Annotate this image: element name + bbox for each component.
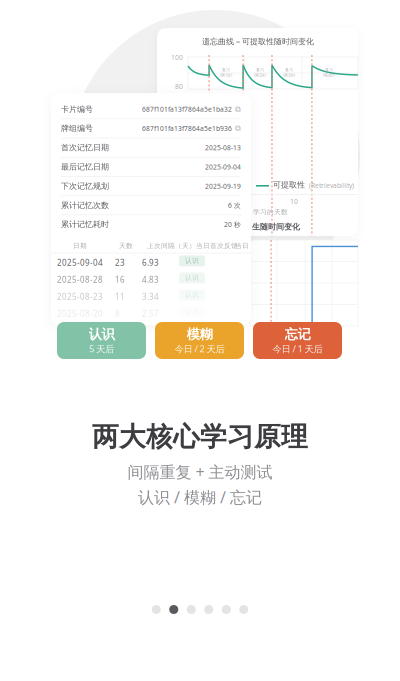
staticText: 认识 / 模糊 / 忘记 — [138, 486, 262, 508]
staticText: 2025-08-23 — [57, 291, 103, 302]
staticText: 间隔重复 + 主动测试 — [127, 461, 272, 482]
staticText: 认识 — [185, 274, 199, 282]
staticText: 2025-08-13 — [205, 143, 241, 152]
staticText: 100 — [171, 53, 183, 62]
staticText: 8 — [115, 308, 120, 319]
staticText: 2025-09-04 — [57, 257, 103, 268]
staticText: (第3次) — [283, 72, 295, 78]
staticText: 天数 — [119, 242, 133, 250]
staticText: 忘记 — [284, 326, 310, 342]
staticText: 6.93 — [142, 257, 159, 268]
staticText: 4.83 — [142, 274, 159, 285]
staticText: (第2次) — [254, 72, 266, 78]
staticText: 可提取性 — [273, 180, 305, 190]
staticText: 学习的天数 — [253, 208, 288, 216]
staticText: 生随时间变化 — [252, 222, 300, 232]
staticText: 下次记忆规划 — [61, 181, 109, 191]
staticText: 16 — [115, 274, 125, 285]
staticText: 2.57 — [142, 308, 159, 319]
staticText: (第1次) — [220, 72, 232, 78]
staticText: 日期 — [73, 242, 87, 250]
staticText: 复习 — [285, 67, 293, 72]
staticText: 认识 — [185, 291, 199, 299]
button[interactable]: 模糊 — [155, 322, 244, 359]
staticText: 当日 — [235, 242, 249, 250]
staticText: 今日 / 1 天后 — [272, 342, 322, 355]
button[interactable]: 认识 — [57, 322, 146, 359]
staticText: 5 天后 — [89, 342, 114, 355]
staticText: 20 秒 — [224, 220, 241, 229]
staticText: 模糊 — [186, 326, 212, 342]
staticText: 复习 — [325, 67, 333, 72]
staticText: 2025-08-20 — [57, 308, 103, 319]
staticText: 23 — [115, 257, 125, 268]
staticText: 2025-09-19 — [205, 182, 241, 190]
staticText: 上次间隔（天） — [147, 242, 196, 250]
staticText: 首次记忆日期 — [61, 143, 109, 152]
staticText: 10 — [290, 197, 298, 206]
staticText: 遗忘曲线 – 可提取性随时间变化 — [202, 36, 314, 47]
staticText: ⧉ — [235, 124, 241, 132]
staticText: 当日首次反馈 — [196, 242, 238, 250]
staticText: 80 — [175, 82, 183, 91]
staticText: 认识 — [88, 326, 114, 342]
staticText: 2025-08-28 — [57, 274, 103, 285]
staticText: 3.34 — [142, 291, 159, 302]
staticText: 两大核心学习原理 — [92, 420, 308, 453]
staticText: 累计记忆次数 — [61, 200, 109, 210]
staticText: 卡片编号 — [61, 104, 93, 114]
staticText: 6 次 — [228, 201, 241, 210]
staticText: 687f101fa13f7864a5e1b936 — [142, 124, 232, 133]
staticText: 2025-09-04 — [205, 162, 241, 171]
staticText: (Retrievability) — [309, 181, 354, 190]
staticText: (第4次) — [323, 72, 335, 78]
staticText: 认识 — [185, 257, 199, 265]
button[interactable]: 忘记 — [253, 322, 342, 359]
staticText: 累计记忆耗时 — [61, 219, 109, 229]
staticText: ⧉ — [235, 105, 241, 113]
staticText: 牌组编号 — [61, 123, 93, 133]
staticText: 复习 — [256, 67, 264, 72]
staticText: 687f101fa13f7864a5e1ba32 — [142, 105, 232, 114]
staticText: 复习 — [222, 67, 230, 72]
staticText: 11 — [115, 291, 125, 302]
staticText: 今日 / 2 天后 — [174, 342, 224, 355]
staticText: 最后记忆日期 — [61, 162, 109, 172]
